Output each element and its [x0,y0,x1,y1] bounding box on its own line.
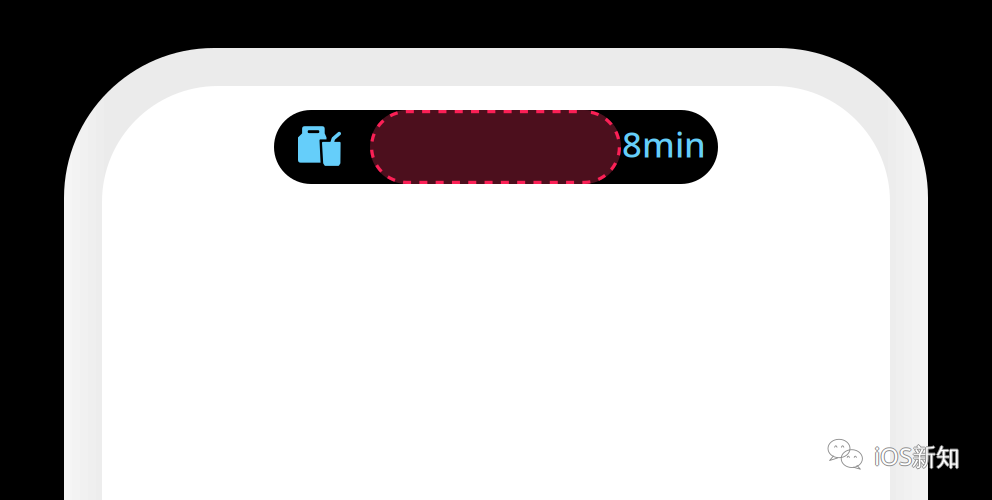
button[interactable]: Order delivery Live Activity, 8 min rema… [274,110,718,184]
staticText: iOS新知 [874,440,960,472]
staticText: iOS新知 [874,439,960,471]
staticText: iOS新知 [873,440,959,472]
staticText: 8min [622,121,706,167]
staticText: iOS新知 [874,441,960,473]
staticText: iOS新知 [875,440,961,472]
